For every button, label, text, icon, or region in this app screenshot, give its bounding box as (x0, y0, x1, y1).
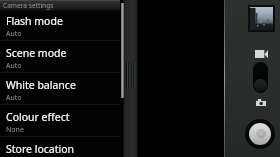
button[interactable]: White balance (0, 74, 120, 105)
staticText: White balance (6, 78, 76, 92)
button[interactable]: Camera video mode toggle (253, 62, 268, 93)
button[interactable]: Settings drawer handle (123, 0, 138, 157)
button[interactable]: Store location (0, 138, 120, 157)
staticText: Camera settings (3, 1, 54, 10)
staticText: None (6, 125, 24, 135)
staticText: Auto (6, 61, 22, 71)
button[interactable]: Scene mode (0, 42, 120, 73)
button[interactable]: Camera mode (256, 99, 266, 106)
button[interactable]: Colour effect (0, 106, 120, 137)
button[interactable]: Flash mode (0, 10, 120, 41)
staticText: Store location (6, 142, 75, 156)
button[interactable]: Shutter (245, 119, 275, 149)
staticText: Auto (6, 93, 22, 103)
staticText: Scene mode (6, 46, 67, 60)
staticText: Flash mode (6, 14, 63, 28)
button[interactable]: Video mode (255, 50, 268, 58)
staticText: Colour effect (6, 110, 70, 124)
staticText: Auto (6, 29, 22, 39)
button[interactable]: Gallery (248, 5, 275, 32)
